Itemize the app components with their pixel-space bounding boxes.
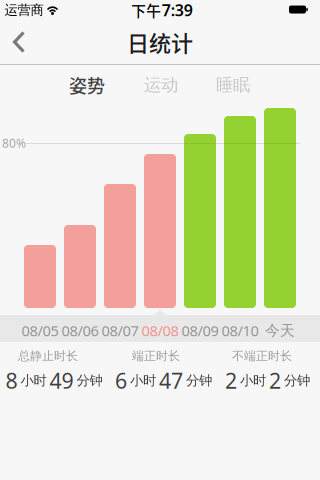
button[interactable]: 08/05 xyxy=(20,317,60,344)
staticText: 下午 xyxy=(131,0,161,21)
staticText: 2 xyxy=(269,366,281,395)
staticText: 47 xyxy=(159,366,183,395)
staticText: 80% xyxy=(2,135,26,151)
button[interactable]: 姿势 xyxy=(59,71,115,99)
staticText: 睡眠 xyxy=(216,74,250,96)
staticText: 小时 xyxy=(130,372,156,389)
button[interactable]: 08/09 xyxy=(180,317,220,344)
staticText: 分钟 xyxy=(284,372,310,389)
button[interactable]: 睡眠 xyxy=(205,71,261,99)
staticText: 08/07 xyxy=(101,321,138,340)
staticText: 2 xyxy=(225,366,237,395)
staticText: 小时 xyxy=(240,372,266,389)
staticText: 08/08 xyxy=(141,321,178,340)
staticText: 总静止时长 xyxy=(18,349,78,363)
staticText: 8 xyxy=(5,366,17,395)
button[interactable]: 08/08 xyxy=(140,317,180,344)
staticText: 08/09 xyxy=(181,321,218,340)
staticText: 7:39 xyxy=(162,0,193,21)
staticText: 日统计 xyxy=(127,26,193,58)
staticText: 运动 xyxy=(144,74,178,96)
staticText: 分钟 xyxy=(76,372,102,389)
staticText: 08/10 xyxy=(221,321,258,340)
staticText: 端正时长 xyxy=(132,349,180,363)
button[interactable]: 08/06 xyxy=(60,317,100,344)
button[interactable]: 08/10 xyxy=(220,317,260,344)
staticText: 6 xyxy=(115,366,127,395)
button[interactable]: 运动 xyxy=(133,71,189,99)
staticText: 今天 xyxy=(265,321,295,339)
staticText: 分钟 xyxy=(186,372,212,389)
button[interactable]: 08/07 xyxy=(100,317,140,344)
staticText: 姿势 xyxy=(69,72,105,98)
staticText: 08/06 xyxy=(61,321,98,340)
staticText: 08/05 xyxy=(21,321,58,340)
button[interactable] xyxy=(3,27,33,57)
staticText: 小时 xyxy=(20,372,46,389)
staticText: 运营商 xyxy=(4,2,43,18)
staticText: 49 xyxy=(49,366,73,395)
button[interactable]: 今天 xyxy=(260,317,300,344)
staticText: 不端正时长 xyxy=(232,349,292,363)
